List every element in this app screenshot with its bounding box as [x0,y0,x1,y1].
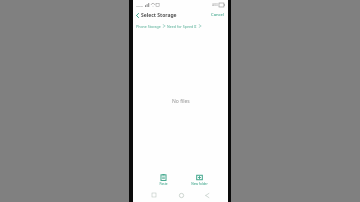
button[interactable]: Need for Speed II [167,23,197,30]
button[interactable]: Home [176,190,186,200]
button[interactable]: Back [202,190,212,200]
staticText: No files [172,98,190,105]
button[interactable]: New folder [184,173,214,187]
staticText: New folder [191,182,208,186]
staticText: Paste [159,182,168,186]
button[interactable]: Cancel [208,10,228,20]
staticText: Cancel [211,12,225,18]
staticText: VoLTE [136,4,144,7]
staticText: 4:03 [212,3,218,7]
button[interactable]: Back [133,10,179,21]
button[interactable]: Phone Storage [136,23,161,30]
button[interactable]: Recent apps [149,190,159,200]
staticText: Select Storage [141,12,177,19]
staticText: Need for Speed II [167,24,197,29]
button[interactable]: Paste [148,173,178,187]
staticText: Phone Storage [136,24,161,29]
